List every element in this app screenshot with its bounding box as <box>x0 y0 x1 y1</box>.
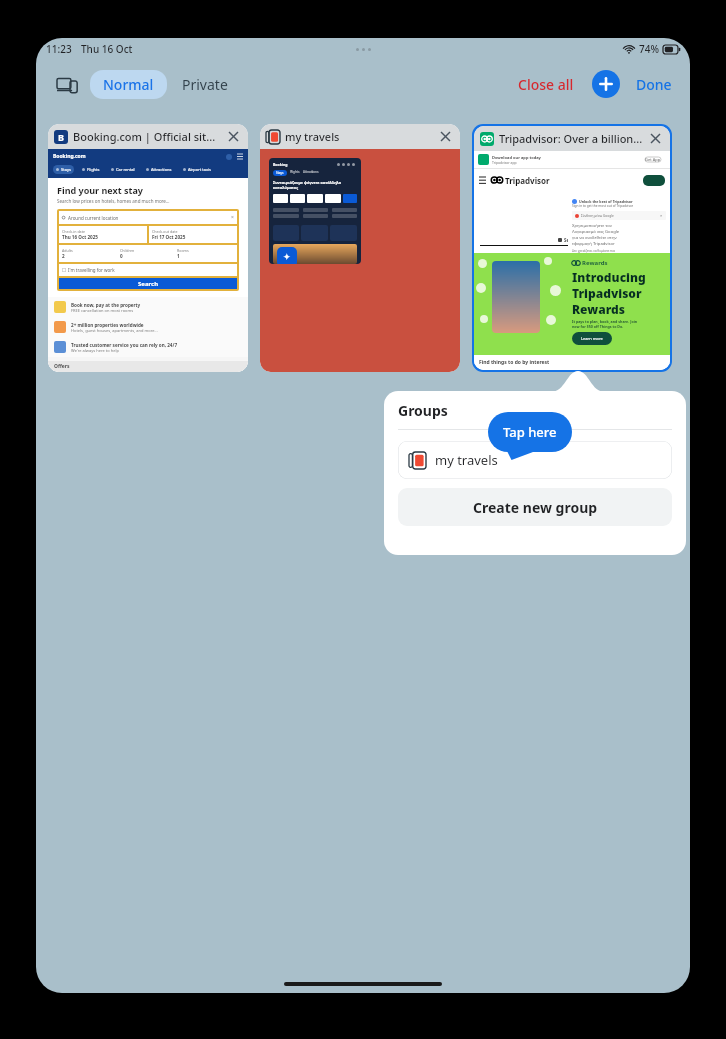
staticText: 0 <box>120 253 123 259</box>
staticText: Around current location <box>68 215 119 221</box>
staticText: 11:23 <box>46 42 72 56</box>
staticText: It pays to plan, book, and share. Join n… <box>572 319 638 329</box>
staticText: We're always here to help <box>71 348 119 353</box>
staticText: Attractions <box>303 170 319 174</box>
staticText: × <box>660 213 663 218</box>
button[interactable]: Learn more <box>572 332 612 345</box>
staticText: 2 <box>62 253 65 259</box>
staticText: Hotels, guest houses, apartments, and mo… <box>71 328 158 333</box>
staticText: I'm travelling for work <box>68 267 115 273</box>
button[interactable]: Tripadvisor: Over a billion... <box>474 126 670 370</box>
staticText: Fri 17 Oct 2025 <box>152 234 186 240</box>
button[interactable]: Close tab <box>225 128 242 145</box>
staticText: Tap here <box>503 423 557 441</box>
staticText: Sign in to get the most out of Tripadvis… <box>572 204 634 208</box>
button[interactable]: my travels <box>398 441 672 479</box>
staticText: Wher <box>616 197 664 222</box>
staticText: Adults <box>62 248 73 253</box>
staticText: Find your next stay <box>57 184 143 196</box>
button[interactable]: Desktop site <box>50 67 84 101</box>
staticText: Booking.com <box>53 153 86 160</box>
staticText: καταλύματος <box>273 185 299 190</box>
staticText: Groups <box>398 401 448 420</box>
staticText: Tripadvisor <box>572 285 642 301</box>
staticText: Rewards <box>582 259 608 267</box>
staticText: Booking <box>273 162 288 167</box>
staticText: Normal <box>103 75 154 94</box>
staticText: Search <box>138 280 159 288</box>
staticText: Unlock the best of Tripadvisor <box>579 199 633 204</box>
staticText: Thu 16 Oct <box>81 42 133 56</box>
staticText: Book now, pay at the property <box>71 302 141 308</box>
staticText: Check-out date <box>152 229 178 234</box>
staticText: Flights <box>290 170 300 174</box>
button[interactable]: Normal <box>90 70 167 99</box>
staticText: Χρησιμοποιήστε τον Λογαριασμό σας Google… <box>572 223 620 247</box>
staticText: Introducing <box>572 269 646 285</box>
button[interactable]: Private <box>172 70 238 99</box>
staticText: Rewards <box>572 301 626 317</box>
button[interactable]: Create new group <box>398 488 672 526</box>
button[interactable]: my travels <box>260 124 460 372</box>
staticText: Close all <box>518 75 574 94</box>
staticText: Search low prices on hotels, homes and m… <box>57 198 170 204</box>
staticText: Tripadvisor: Over a billion... <box>499 131 643 146</box>
staticText: Συνταιριάζουμε ψάγνετε κατάλληλο <box>273 180 342 185</box>
staticText: Airport taxis <box>188 167 212 172</box>
staticText: FREE cancellation on most rooms <box>71 308 134 313</box>
button[interactable]: Close all <box>512 71 580 98</box>
staticText: my travels <box>285 129 433 144</box>
button[interactable]: Close tab <box>437 128 454 145</box>
staticText: 2+ million properties worldwide <box>71 322 144 328</box>
staticText: Tripadvisor app <box>492 160 517 165</box>
staticText: B <box>58 131 64 143</box>
staticText: Done <box>636 75 672 94</box>
staticText: ✦ <box>283 252 291 262</box>
staticText: Car rental <box>116 167 135 172</box>
staticText: 1 <box>177 253 180 259</box>
staticText: Offers <box>54 363 70 370</box>
staticText: × <box>231 214 234 221</box>
button[interactable]: B <box>48 124 248 372</box>
staticText: Tripadvisor <box>505 175 550 186</box>
staticText: my travels <box>435 451 498 469</box>
staticText: Rooms <box>177 248 189 253</box>
staticText: Booking.com | Official sit... <box>73 129 221 144</box>
button[interactable]: New tab <box>592 70 620 98</box>
staticText: Attractions <box>151 167 172 172</box>
staticText: Learn more <box>581 336 603 341</box>
staticText: Search All <box>564 237 586 243</box>
staticText: Thu 16 Oct 2025 <box>62 234 98 240</box>
staticText: Flights <box>87 167 100 172</box>
staticText: 74% <box>639 42 659 56</box>
staticText: Children <box>120 248 135 253</box>
staticText: Find things to do by interest <box>479 359 550 366</box>
staticText: Get App <box>645 157 661 162</box>
staticText: Σύνδεση μέσω Google <box>581 214 614 218</box>
button[interactable]: Close tab <box>647 130 664 147</box>
staticText: Trusted customer service you can rely on… <box>71 342 178 348</box>
staticText: Δεν χρειάζεται να θυμάστε πια κωδικούς π… <box>572 249 618 253</box>
staticText: Check-in date <box>62 229 85 234</box>
staticText: Stays <box>276 171 284 175</box>
button[interactable]: Done <box>632 71 676 98</box>
staticText: Private <box>182 75 228 94</box>
staticText: Download our app today <box>492 155 541 160</box>
staticText: Stays <box>61 167 71 172</box>
staticText: Create new group <box>473 498 598 517</box>
